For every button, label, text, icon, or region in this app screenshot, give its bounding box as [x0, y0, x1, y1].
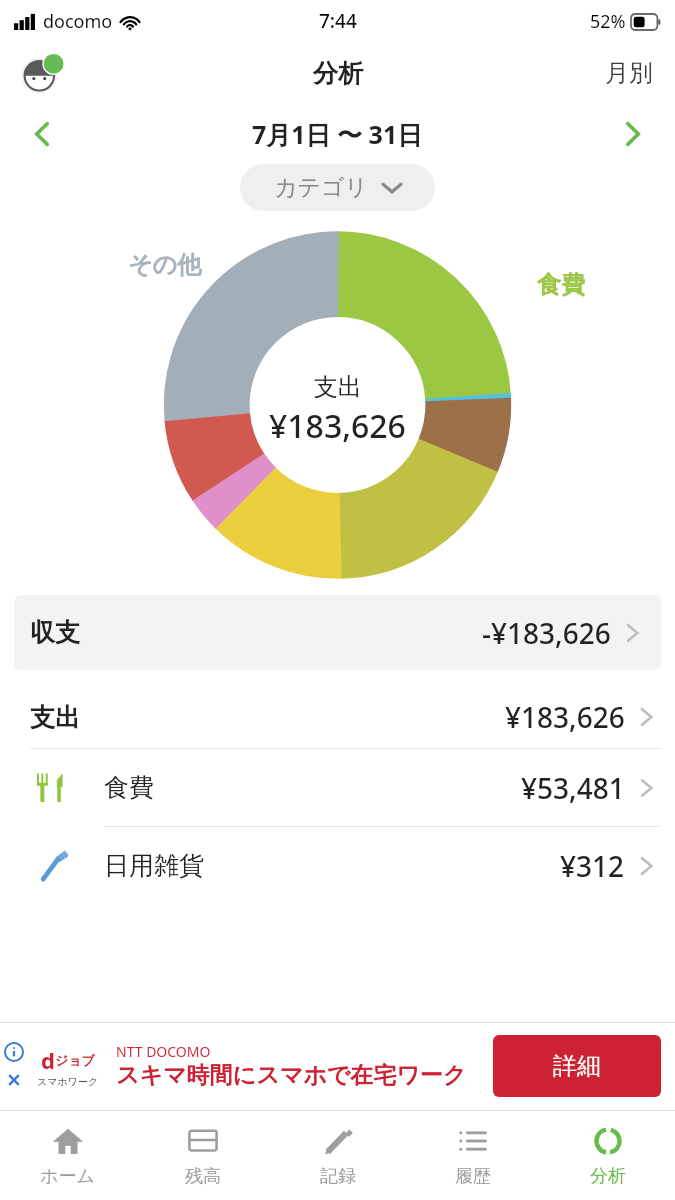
button[interactable]: 分析	[540, 1111, 675, 1200]
button[interactable]: ホーム	[0, 1111, 135, 1200]
staticText: ¥53,481	[521, 769, 625, 807]
staticText: 記録	[320, 1165, 356, 1188]
staticText: ホーム	[40, 1165, 95, 1188]
staticText: d	[41, 1045, 55, 1075]
staticText: -¥183,626	[482, 614, 611, 652]
staticText: 7月1日 〜 31日	[252, 117, 423, 151]
staticText: 詳細	[553, 1051, 601, 1081]
staticText: 食費	[104, 772, 154, 803]
staticText: 分析	[313, 58, 363, 89]
staticText: スマホワーク	[37, 1075, 99, 1088]
button[interactable]: Next period	[613, 114, 653, 154]
staticText: ¥183,626	[505, 698, 625, 736]
staticText: 52%	[590, 9, 626, 34]
staticText: 月別	[605, 58, 653, 88]
staticText: その他	[128, 250, 202, 280]
staticText: スキマ時間にスマホで在宅ワーク	[116, 1061, 467, 1090]
button[interactable]: 日用雑貨	[0, 827, 675, 904]
button[interactable]: 履歴	[405, 1111, 540, 1200]
staticText: 履歴	[455, 1165, 491, 1188]
staticText: ¥312	[560, 847, 625, 885]
staticText: 収支	[30, 617, 80, 648]
button[interactable]: カテゴリ	[240, 164, 435, 211]
button[interactable]: 支出	[0, 686, 675, 748]
staticText: 7:44	[319, 8, 357, 34]
staticText: 食費	[537, 270, 585, 300]
button[interactable]: 収支	[14, 595, 661, 670]
staticText: docomo	[43, 9, 113, 34]
staticText: 支出	[30, 702, 80, 733]
button[interactable]: 記録	[270, 1111, 405, 1200]
staticText: 残高	[185, 1165, 221, 1188]
staticText: ジョブ	[55, 1052, 95, 1068]
staticText: ¥183,626	[269, 404, 406, 448]
button[interactable]: Profile	[20, 50, 66, 96]
button[interactable]: 残高	[135, 1111, 270, 1200]
button[interactable]: Previous period	[22, 114, 62, 154]
staticText: 日用雑貨	[104, 850, 204, 881]
button[interactable]: d	[0, 1022, 675, 1110]
staticText: カテゴリ	[274, 173, 369, 202]
staticText: NTT DOCOMO	[116, 1042, 211, 1061]
staticText: 支出	[314, 372, 362, 402]
staticText: 分析	[590, 1165, 626, 1188]
button[interactable]: 食費	[0, 749, 675, 826]
button[interactable]: 月別	[583, 48, 675, 98]
button[interactable]: 詳細	[493, 1035, 661, 1097]
